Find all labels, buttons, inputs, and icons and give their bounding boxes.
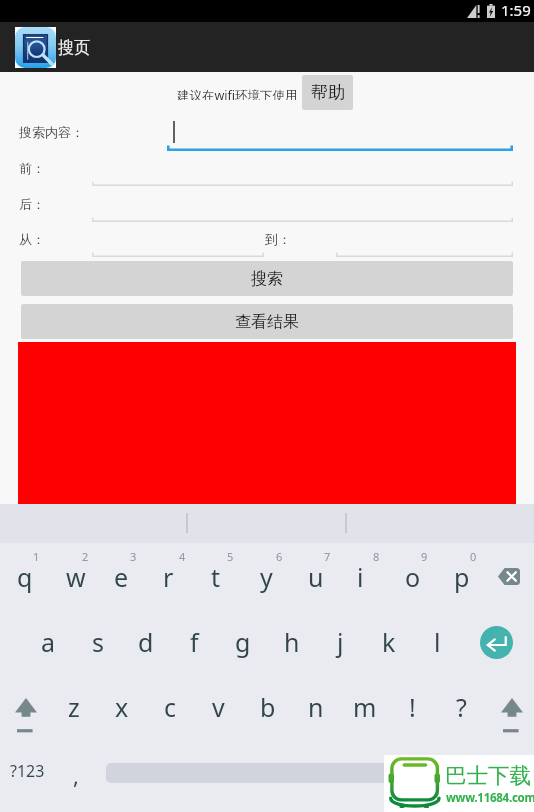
button[interactable]: g (218, 608, 267, 673)
button[interactable]: d (121, 608, 170, 673)
staticText: ?123 (10, 760, 45, 782)
button[interactable]: v (194, 673, 243, 738)
staticText: o (405, 560, 421, 594)
staticText: 从： (19, 231, 45, 247)
staticText: 前： (19, 160, 45, 176)
staticText: x (115, 690, 129, 724)
button[interactable]: s (73, 608, 122, 673)
button[interactable]: 1 (0, 543, 49, 608)
button[interactable]: 2 (49, 543, 98, 608)
staticText: 建议在wifi环境下使用 (177, 87, 298, 100)
staticText: a (41, 625, 56, 659)
staticText: 到： (265, 231, 291, 247)
staticText: 后： (19, 196, 45, 212)
button[interactable]: ! (388, 673, 437, 738)
staticText: r (163, 560, 174, 594)
staticText: u (308, 560, 324, 594)
button[interactable] (167, 121, 513, 151)
button[interactable]: ? (437, 673, 486, 738)
button[interactable]: n (291, 673, 340, 738)
button[interactable]: j (316, 608, 365, 673)
button[interactable]: ?123 (0, 738, 56, 812)
staticText: 3 (130, 549, 137, 564)
staticText: ? (456, 690, 467, 724)
button[interactable]: f (170, 608, 219, 673)
button[interactable]: a (24, 608, 73, 673)
button[interactable]: . (400, 738, 449, 812)
staticText: g (235, 625, 251, 659)
staticText: s (92, 625, 104, 659)
staticText: 9 (421, 549, 428, 564)
staticText: l (434, 625, 441, 659)
staticText: 巴士下载 (445, 762, 531, 789)
staticText: , (73, 760, 79, 790)
staticText: 0 (470, 549, 477, 564)
button[interactable]: 搜索 (21, 261, 513, 296)
button[interactable]: 6 (243, 543, 292, 608)
staticText: 1:59 (501, 0, 531, 20)
button[interactable]: Emoji (449, 738, 534, 812)
staticText: e (114, 560, 129, 594)
button[interactable]: 8 (340, 543, 389, 608)
staticText: www.11684.com (446, 790, 534, 806)
staticText: 6 (276, 549, 283, 564)
staticText: q (17, 560, 33, 594)
staticText: 1 (33, 549, 40, 564)
staticText: m (353, 690, 377, 724)
staticText: v (212, 690, 225, 724)
button[interactable]: Shift (0, 673, 49, 738)
staticText: w (66, 560, 86, 594)
staticText: z (68, 690, 80, 724)
staticText: 搜页 (58, 38, 90, 58)
staticText: b (260, 690, 276, 724)
button[interactable]: 5 (194, 543, 243, 608)
staticText: 2 (82, 549, 89, 564)
button[interactable]: Shift (486, 673, 534, 738)
staticText: h (284, 625, 300, 659)
button[interactable]: 查看结果 (21, 304, 513, 339)
button[interactable] (92, 156, 513, 186)
staticText: 5 (227, 549, 234, 564)
button[interactable]: h (267, 608, 316, 673)
staticText: c (164, 690, 177, 724)
staticText: y (260, 560, 273, 594)
staticText: 搜索 (251, 269, 283, 289)
button[interactable] (92, 192, 513, 222)
staticText: i (357, 560, 364, 594)
button[interactable]: Space (106, 763, 400, 783)
button[interactable]: 3 (97, 543, 146, 608)
button[interactable]: l (413, 608, 462, 673)
button[interactable]: 9 (388, 543, 437, 608)
staticText: ! (409, 690, 416, 724)
button[interactable] (92, 227, 264, 257)
staticText: f (190, 625, 199, 659)
button[interactable]: , (56, 738, 105, 812)
staticText: 8 (373, 549, 380, 564)
button[interactable]: Backspace (486, 543, 534, 608)
staticText: 搜索内容： (19, 124, 84, 140)
button[interactable]: c (146, 673, 195, 738)
button[interactable]: 7 (291, 543, 340, 608)
button[interactable] (336, 227, 513, 257)
button[interactable]: k (364, 608, 413, 673)
button[interactable]: Enter (461, 608, 510, 673)
staticText: n (308, 690, 324, 724)
staticText: 7 (324, 549, 331, 564)
staticText: j (337, 625, 344, 659)
button[interactable]: x (97, 673, 146, 738)
button[interactable]: 帮助 (302, 75, 353, 110)
staticText: 4 (179, 549, 186, 564)
staticText: 帮助 (311, 82, 345, 103)
button[interactable]: 4 (146, 543, 195, 608)
button[interactable]: z (49, 673, 98, 738)
staticText: k (382, 625, 396, 659)
button[interactable]: 0 (437, 543, 486, 608)
staticText: d (138, 625, 154, 659)
staticText: t (211, 560, 221, 594)
button[interactable]: m (340, 673, 389, 738)
staticText: p (454, 560, 470, 594)
staticText: 查看结果 (235, 312, 299, 332)
staticText: . (418, 760, 424, 790)
button[interactable]: b (243, 673, 292, 738)
